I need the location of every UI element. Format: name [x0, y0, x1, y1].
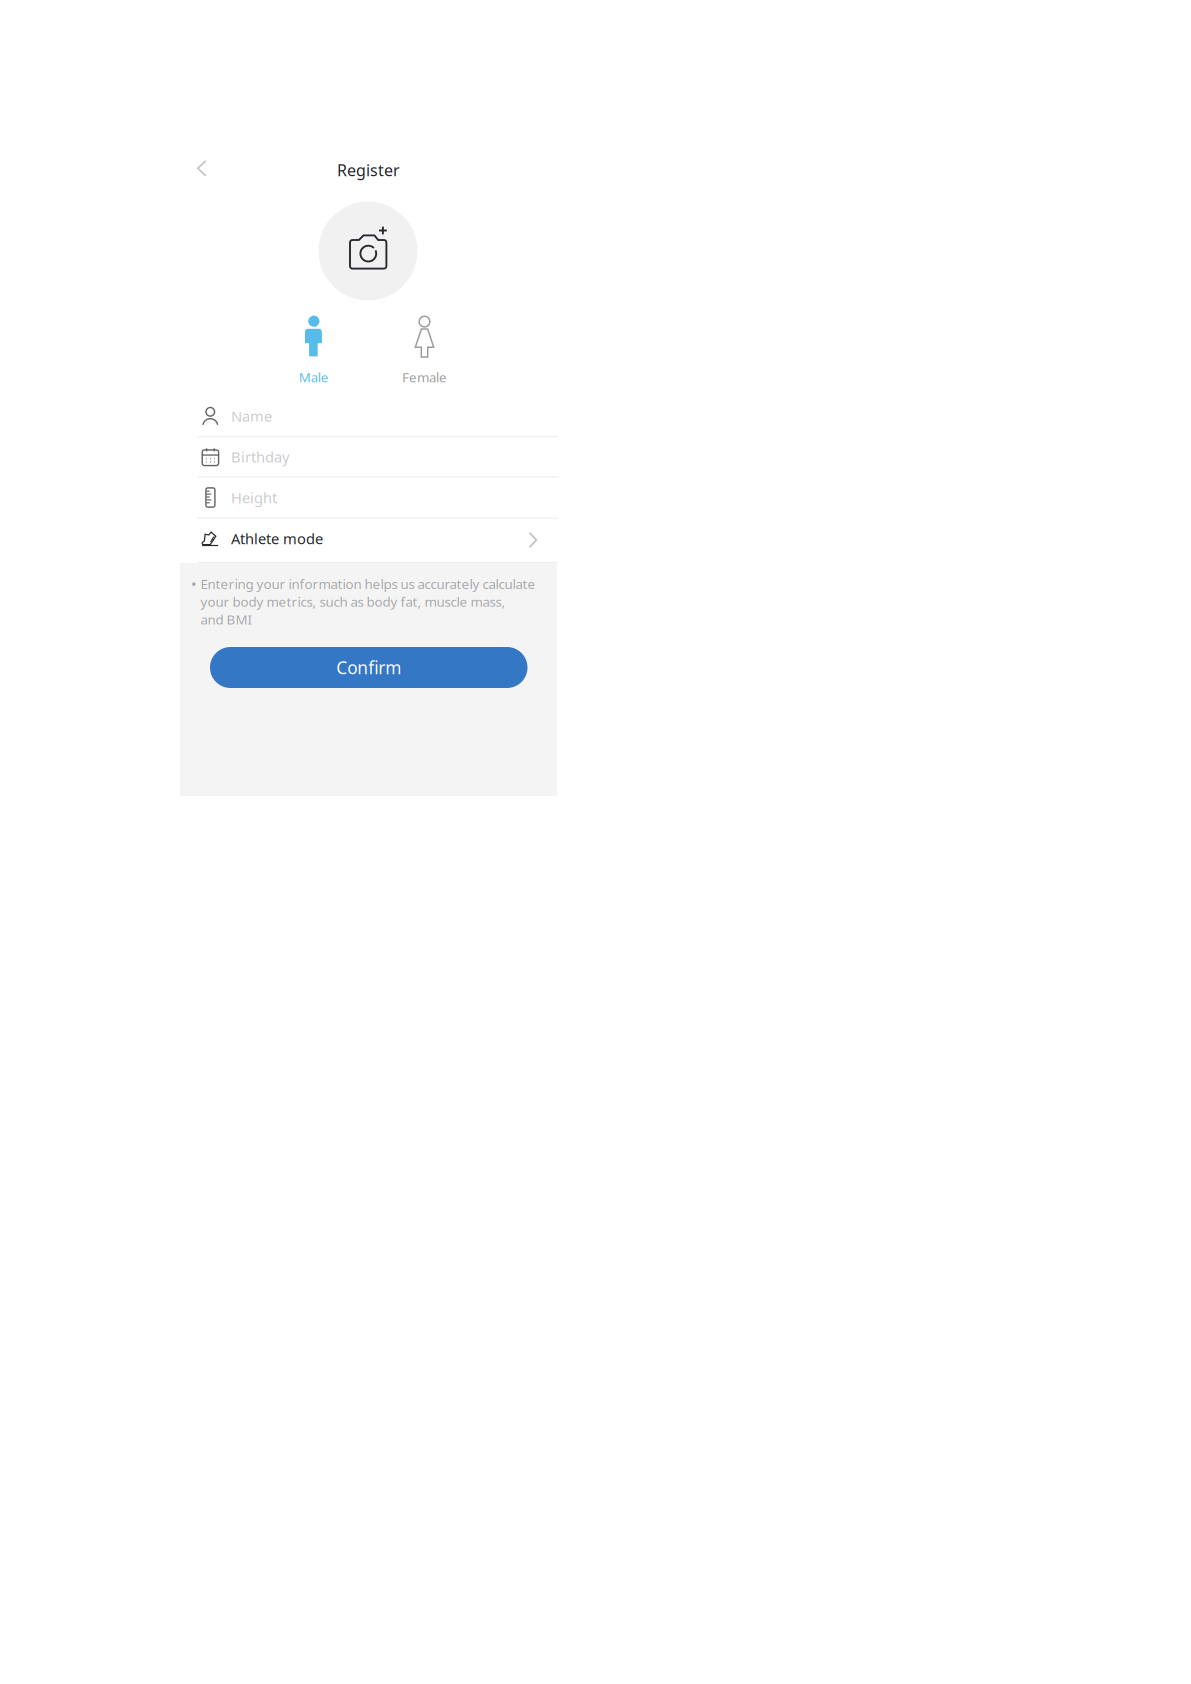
button[interactable]: Add profile photo [318, 201, 417, 300]
staticText: Register [337, 159, 400, 181]
staticText: • [191, 574, 197, 594]
button[interactable]: Birthday [197, 437, 558, 477]
staticText: Male [299, 368, 329, 386]
staticText: Female [402, 368, 447, 386]
staticText: Birthday [231, 447, 289, 467]
button[interactable]: Male [279, 316, 349, 386]
staticText: Athlete mode [231, 529, 323, 548]
button[interactable]: Female [389, 316, 459, 386]
button[interactable]: Name [197, 396, 558, 437]
button[interactable]: Back [187, 153, 217, 183]
staticText: Name [231, 406, 272, 426]
button[interactable]: Confirm [210, 647, 527, 688]
staticText: Entering your information helps us accur… [200, 575, 535, 628]
staticText: Height [231, 488, 277, 507]
button[interactable]: Athlete mode [197, 518, 558, 562]
staticText: Confirm [336, 656, 401, 679]
button[interactable]: Height [197, 477, 558, 518]
